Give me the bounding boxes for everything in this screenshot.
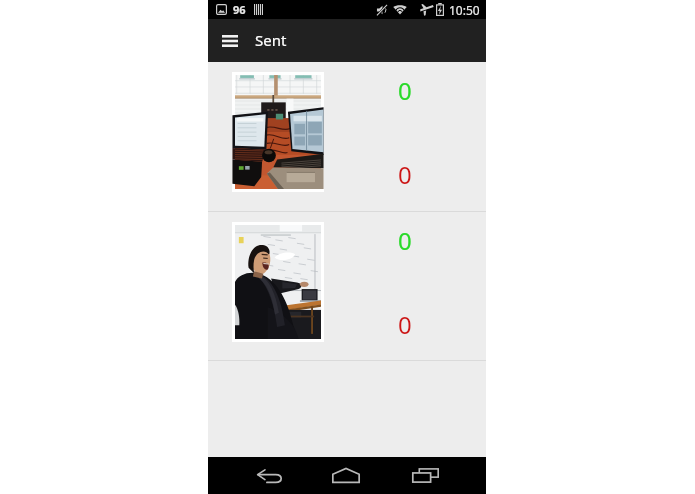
button[interactable]: Open navigation drawer [217, 29, 243, 53]
staticText: 0 [398, 224, 412, 257]
staticText: 96 [233, 2, 246, 17]
button[interactable]: 0 [208, 62, 486, 211]
staticText: 0 [398, 158, 412, 191]
staticText: Sent [255, 30, 287, 50]
button[interactable]: Back [252, 462, 288, 489]
button[interactable]: Home [328, 462, 364, 489]
staticText: 0 [398, 74, 412, 107]
button[interactable]: Recent apps [407, 462, 443, 489]
staticText: 0 [398, 308, 412, 341]
button[interactable]: 0 [208, 212, 486, 360]
staticText: 10:50 [449, 2, 480, 18]
